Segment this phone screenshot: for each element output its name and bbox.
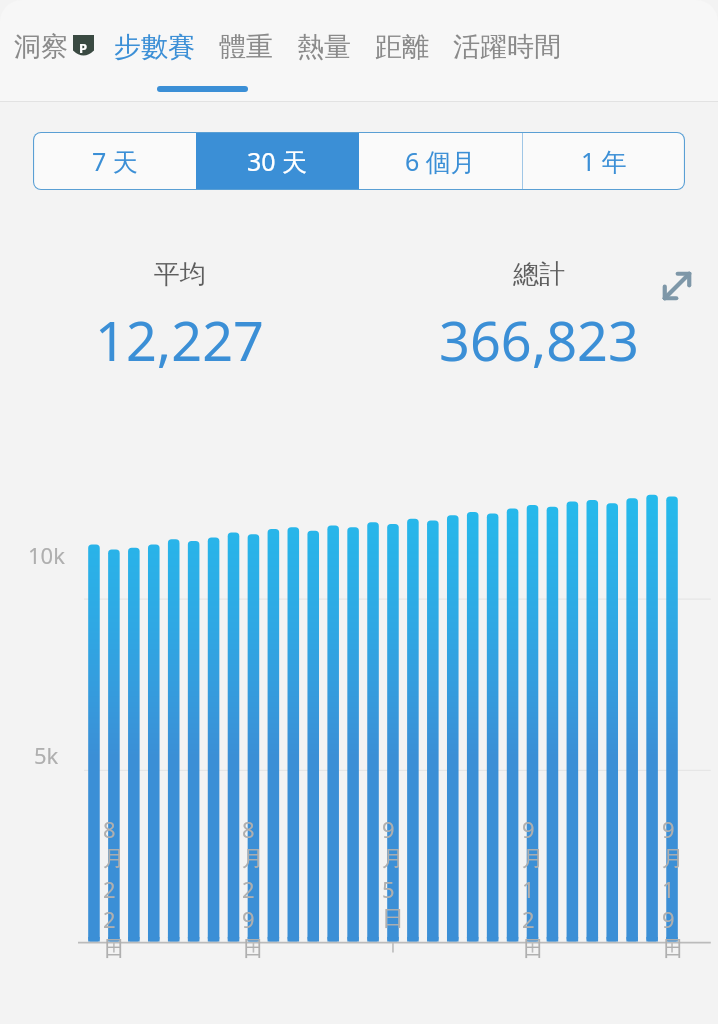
staticText: 12,227 [95, 303, 264, 377]
staticText: 平均 [154, 258, 206, 291]
button[interactable]: 步數賽 [102, 0, 207, 74]
staticText: 距離 [375, 30, 429, 64]
button[interactable]: 距離 [363, 0, 441, 74]
staticText: 6 個月 [405, 144, 476, 178]
staticText: 熱量 [297, 30, 351, 64]
staticText: 1 年 [581, 144, 627, 178]
staticText: 7 天 [92, 144, 138, 178]
staticText: 5k [34, 740, 59, 770]
button[interactable]: 體重 [207, 0, 285, 74]
button[interactable]: 活躍時間 [441, 0, 573, 74]
staticText: 總計 [513, 258, 565, 291]
button[interactable]: 6 個月 [359, 132, 522, 190]
button[interactable]: Expand chart [650, 262, 704, 310]
staticText: 活躍時間 [453, 30, 561, 64]
staticText: 洞察 [14, 30, 68, 64]
button[interactable]: 洞察 [0, 0, 102, 74]
staticText: 步數賽 [114, 30, 195, 64]
button[interactable]: 1 年 [522, 132, 685, 190]
button[interactable]: 30 天 [196, 132, 359, 190]
button[interactable]: 7 天 [33, 132, 196, 190]
staticText: P [79, 39, 88, 57]
staticText: 體重 [219, 30, 273, 64]
staticText: 30 天 [247, 144, 308, 178]
staticText: 10k [28, 540, 65, 570]
staticText: 366,823 [439, 303, 639, 377]
button[interactable]: 熱量 [285, 0, 363, 74]
